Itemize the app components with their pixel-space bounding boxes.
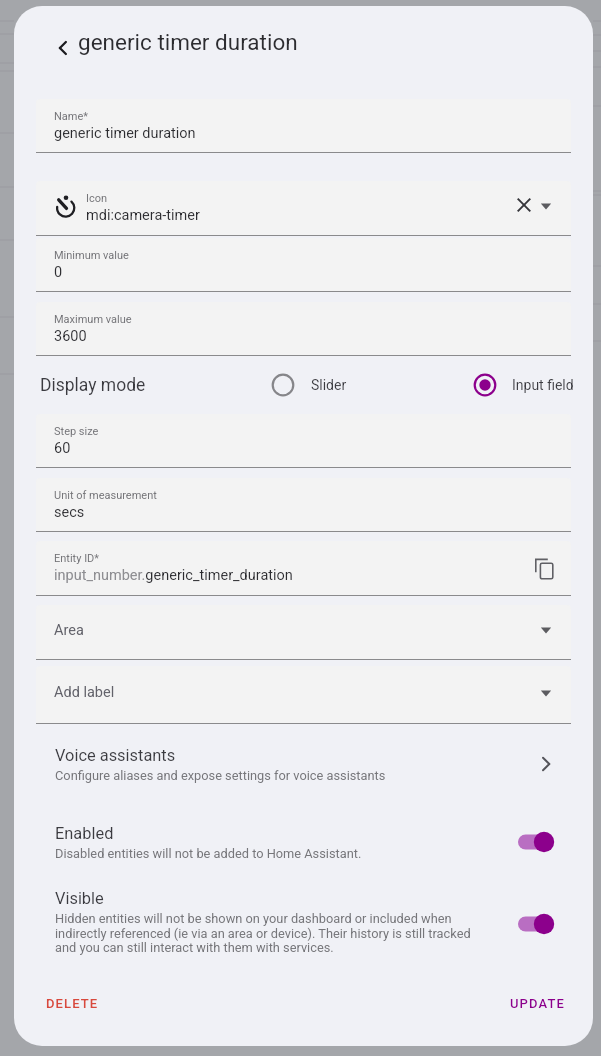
button[interactable]: Enabled — [14, 810, 593, 876]
staticText: Slider — [311, 377, 347, 393]
button[interactable] — [36, 478, 571, 532]
staticText: mdi:camera-timer — [86, 207, 200, 224]
button[interactable]: Clear icon — [506, 187, 542, 223]
staticText: UPDATE — [510, 996, 565, 1011]
button[interactable] — [36, 99, 571, 153]
staticText: Entity ID* — [54, 552, 100, 565]
button[interactable] — [36, 302, 571, 356]
button[interactable]: Show options — [528, 675, 564, 711]
staticText: indirectly referenced (ie via an area or… — [55, 926, 471, 941]
button[interactable] — [36, 666, 571, 724]
staticText: 3600 — [54, 328, 87, 345]
button[interactable]: Back — [39, 24, 87, 72]
button[interactable]: Slider — [261, 363, 355, 407]
staticText: Disabled entities will not be added to H… — [55, 846, 362, 861]
button[interactable]: Input field — [463, 363, 576, 407]
staticText: and you can still interact with them wit… — [55, 940, 334, 955]
staticText: generic timer duration — [54, 125, 196, 142]
staticText: Input field — [512, 377, 574, 393]
button[interactable] — [36, 541, 571, 596]
staticText: DELETE — [46, 996, 99, 1011]
staticText: Name* — [54, 110, 89, 123]
button[interactable]: Show options — [528, 612, 564, 648]
staticText: Enabled — [55, 824, 114, 843]
staticText: 60 — [54, 440, 71, 457]
button[interactable]: Enabled switch — [504, 820, 576, 864]
button[interactable]: Show options — [528, 188, 564, 224]
other: Open voice assistants — [524, 742, 568, 786]
staticText: 0 — [54, 264, 63, 281]
staticText: Display mode — [40, 375, 146, 396]
staticText: Area — [54, 622, 84, 639]
staticText: Unit of measurement — [54, 489, 157, 502]
button[interactable]: Voice assistants — [14, 740, 593, 798]
staticText: Voice assistants — [55, 746, 176, 765]
staticText: input_number.generic_timer_duration — [54, 567, 293, 584]
staticText: Hidden entities will not be shown on you… — [55, 911, 452, 926]
staticText: Maximum value — [54, 313, 132, 326]
button[interactable]: UPDATE — [502, 985, 573, 1021]
button[interactable]: Visible — [14, 878, 593, 968]
button[interactable] — [36, 605, 571, 660]
staticText: Visible — [55, 889, 104, 908]
button[interactable] — [36, 238, 571, 292]
staticText: Icon — [86, 192, 108, 205]
button[interactable] — [36, 181, 571, 236]
button[interactable]: Copy — [526, 551, 562, 587]
staticText: generic timer duration — [78, 29, 298, 55]
button[interactable]: Visible switch — [504, 902, 576, 946]
button[interactable]: DELETE — [38, 985, 107, 1021]
staticText: Step size — [54, 425, 99, 438]
staticText: secs — [54, 504, 85, 521]
button[interactable] — [36, 414, 571, 468]
staticText: Configure aliases and expose settings fo… — [55, 768, 386, 783]
staticText: Add label — [54, 684, 115, 701]
staticText: Minimum value — [54, 249, 129, 262]
